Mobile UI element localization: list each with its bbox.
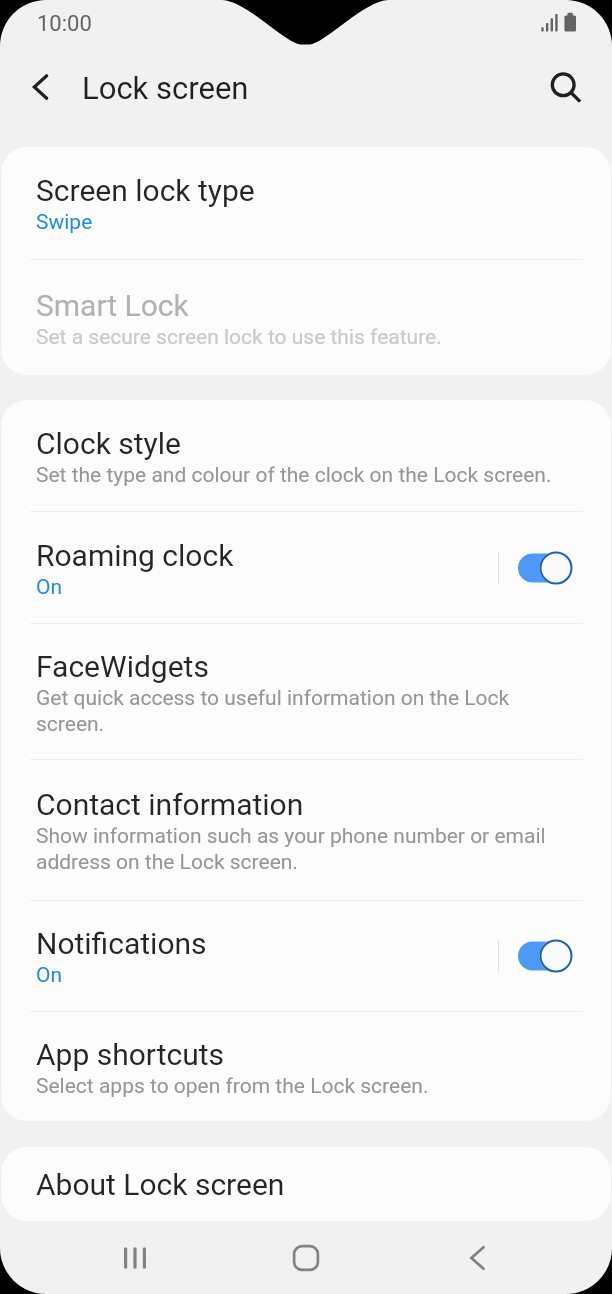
staticText: Select apps to open from the Lock screen…: [36, 1072, 429, 1098]
staticText: Swipe: [36, 208, 93, 234]
button[interactable]: Recent apps: [50, 1221, 220, 1294]
button[interactable]: Roaming clock toggle: [518, 546, 571, 590]
staticText: Notifications: [36, 925, 207, 961]
button[interactable]: Contact information: [1, 760, 611, 900]
button[interactable]: FaceWidgets: [1, 624, 611, 759]
staticText: Set a secure screen lock to use this fea…: [36, 323, 442, 349]
button[interactable]: Smart Lock: [1, 260, 611, 375]
staticText: Get quick access to useful information o…: [36, 684, 575, 736]
staticText: Set the type and colour of the clock on …: [36, 461, 552, 487]
staticText: Smart Lock: [36, 287, 189, 323]
button[interactable]: Roaming clock: [1, 512, 611, 623]
button[interactable]: Notifications: [1, 901, 611, 1011]
staticText: On: [36, 573, 63, 599]
staticText: 10:00: [37, 10, 92, 37]
staticText: Clock style: [36, 425, 181, 461]
staticText: Lock screen: [82, 69, 249, 107]
staticText: Contact information: [36, 786, 304, 822]
button[interactable]: Back: [391, 1221, 562, 1294]
button[interactable]: Clock style: [1, 400, 611, 511]
staticText: Show information such as your phone numb…: [36, 822, 575, 874]
staticText: Screen lock type: [36, 172, 255, 208]
button[interactable]: About Lock screen: [1, 1147, 611, 1221]
button[interactable]: Notifications toggle: [518, 934, 571, 978]
button[interactable]: Search: [542, 62, 592, 112]
staticText: App shortcuts: [36, 1036, 225, 1072]
staticText: Roaming clock: [36, 537, 234, 573]
button[interactable]: Home: [220, 1221, 391, 1294]
staticText: FaceWidgets: [36, 648, 209, 684]
button[interactable]: Screen lock type: [1, 147, 611, 259]
button[interactable]: App shortcuts: [1, 1012, 611, 1121]
button[interactable]: Navigate up: [16, 62, 66, 112]
staticText: About Lock screen: [36, 1166, 285, 1202]
staticText: On: [36, 961, 63, 987]
